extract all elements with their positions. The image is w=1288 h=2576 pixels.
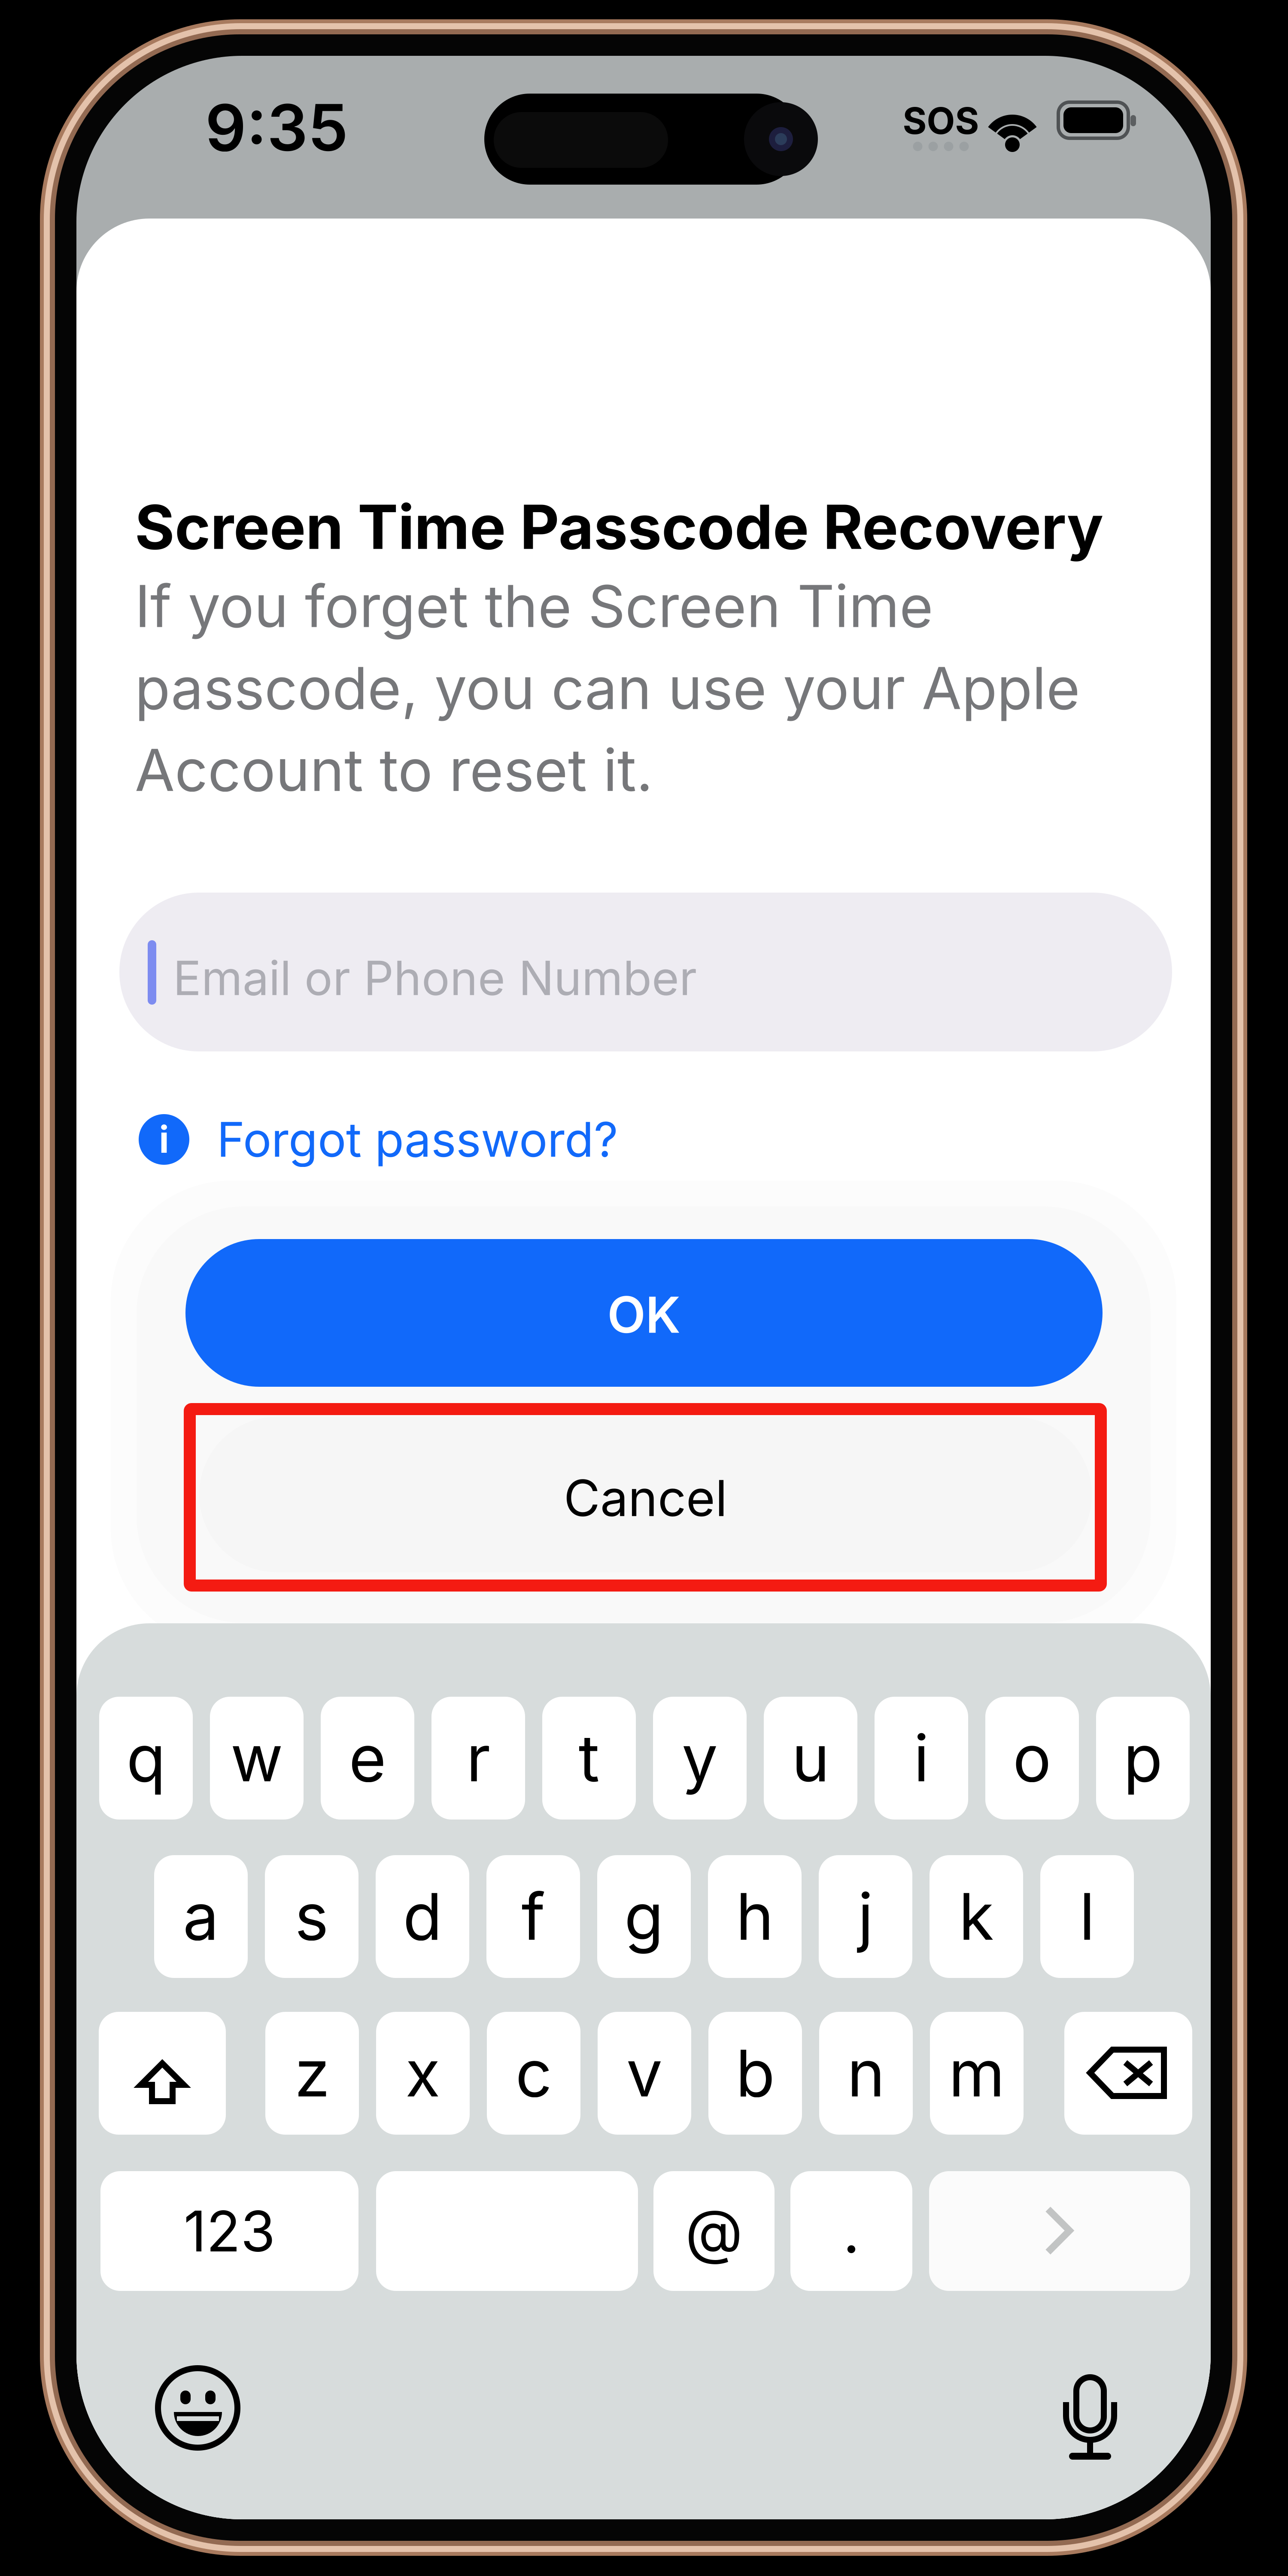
staticText: Cancel: [564, 1468, 727, 1528]
staticText: x: [405, 2034, 440, 2112]
staticText: Screen Time Passcode Recovery: [135, 490, 1103, 563]
button[interactable]: h: [76, 1623, 170, 1746]
button[interactable]: t: [76, 1623, 170, 1746]
staticText: a: [183, 1878, 219, 1955]
button[interactable]: c: [76, 1623, 170, 1746]
staticText: i: [159, 1117, 169, 1162]
staticText: 9:35: [205, 89, 348, 166]
button[interactable]: OK: [76, 56, 993, 204]
button[interactable]: r: [76, 1623, 170, 1746]
staticText: k: [959, 1878, 994, 1955]
staticText: n: [847, 2034, 885, 2112]
staticText: l: [1079, 1878, 1095, 1955]
staticText: Forgot password?: [217, 1111, 618, 1168]
staticText: w: [231, 1719, 283, 1797]
staticText: z: [295, 2034, 330, 2112]
button[interactable]: .: [76, 1623, 198, 1743]
button[interactable]: Emoji: [76, 1623, 156, 1703]
button[interactable]: e: [76, 1623, 170, 1746]
button[interactable]: w: [76, 1623, 170, 1746]
button[interactable]: Return: [76, 1623, 337, 1743]
button[interactable]: m: [76, 1623, 170, 1746]
staticText: e: [349, 1719, 386, 1797]
button[interactable]: Space: [76, 1623, 338, 1743]
button[interactable]: p: [76, 1623, 170, 1746]
button[interactable]: j: [76, 1623, 170, 1746]
button[interactable]: q: [76, 1623, 170, 1746]
staticText: .: [843, 2195, 860, 2267]
staticText: m: [949, 2034, 1005, 2112]
staticText: h: [736, 1878, 774, 1955]
staticText: u: [792, 1719, 829, 1797]
staticText: p: [1123, 1719, 1162, 1797]
button[interactable]: Dictation: [76, 1623, 131, 1706]
staticText: Email or Phone Number: [173, 950, 697, 1006]
staticText: d: [403, 1878, 442, 1955]
button[interactable]: v: [76, 1623, 170, 1746]
staticText: g: [624, 1878, 664, 1955]
button[interactable]: k: [76, 1623, 170, 1746]
button[interactable]: l: [76, 1623, 170, 1746]
button[interactable]: x: [76, 1623, 170, 1746]
button[interactable]: z: [76, 1623, 170, 1746]
staticText: q: [126, 1719, 166, 1797]
button[interactable]: i: [76, 56, 677, 159]
staticText: r: [466, 1719, 490, 1797]
button[interactable]: o: [76, 1623, 170, 1746]
button[interactable]: g: [76, 1623, 170, 1746]
staticText: f: [521, 1878, 545, 1955]
button[interactable]: y: [76, 1623, 170, 1746]
staticText: c: [515, 2034, 552, 2112]
staticText: @: [685, 2195, 743, 2267]
button[interactable]: Shift: [76, 1623, 204, 1746]
button[interactable]: f: [76, 1623, 170, 1746]
button[interactable]: i: [76, 1623, 170, 1746]
button[interactable]: n: [76, 1623, 170, 1746]
button[interactable]: u: [76, 1623, 170, 1746]
staticText: s: [295, 1878, 329, 1955]
staticText: OK: [607, 1284, 681, 1345]
button[interactable]: d: [76, 1623, 170, 1746]
button[interactable]: a: [76, 1623, 170, 1746]
staticText: If you forget the Screen Time passcode, …: [135, 571, 1080, 805]
button[interactable]: b: [76, 1623, 170, 1746]
staticText: j: [858, 1878, 873, 1955]
staticText: i: [914, 1719, 929, 1797]
staticText: b: [736, 2034, 775, 2112]
button[interactable]: s: [76, 1623, 170, 1746]
button[interactable]: Delete: [76, 1623, 204, 1746]
button[interactable]: 123: [76, 1623, 334, 1743]
staticText: 123: [184, 2197, 275, 2265]
staticText: v: [626, 2034, 662, 2112]
button[interactable]: @: [76, 1623, 197, 1743]
staticText: y: [682, 1719, 718, 1797]
staticText: SOS: [903, 98, 979, 143]
staticText: t: [579, 1719, 600, 1797]
staticText: o: [1013, 1719, 1051, 1797]
button[interactable]: Cancel: [76, 56, 969, 211]
